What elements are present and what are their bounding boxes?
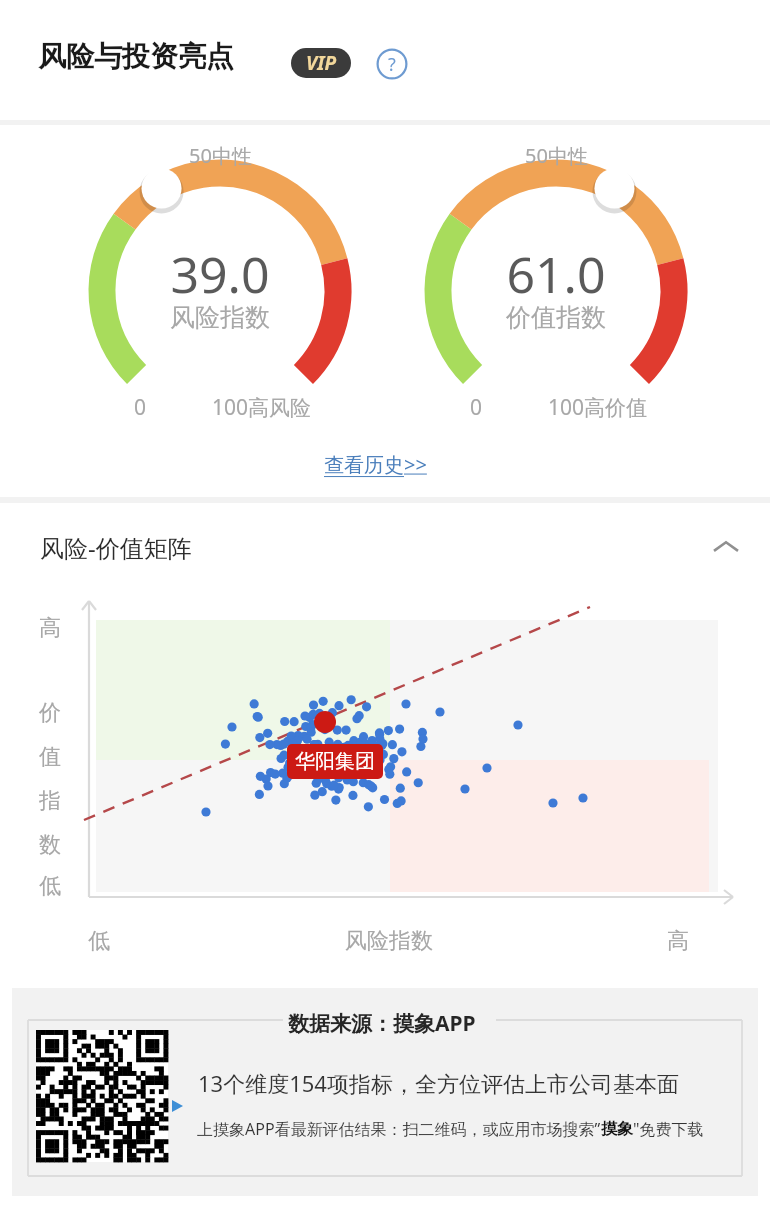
staticText: 0 (134, 393, 147, 422)
staticText: 价值指数 (506, 302, 606, 333)
staticText: 低 (88, 927, 110, 955)
staticText: 39.0 (170, 240, 270, 308)
staticText: 数据来源：摸象APP (288, 1009, 476, 1038)
staticText: 100高风险 (212, 393, 312, 422)
staticText: 0 (470, 393, 483, 422)
staticText: 50中性 (189, 142, 252, 169)
staticText: 值 (39, 743, 61, 771)
staticText: 风险-价值矩阵 (40, 531, 192, 564)
staticText: 高 (667, 927, 689, 955)
staticText: 价 (39, 699, 61, 727)
button[interactable]: 帮助 (376, 48, 408, 80)
staticText: 华阳集团 (295, 749, 375, 774)
staticText: 数 (39, 831, 61, 859)
staticText: VIP (306, 50, 337, 76)
staticText: 50中性 (525, 142, 588, 169)
staticText: 风险与投资亮点 (38, 39, 234, 74)
button[interactable]: VIP (291, 48, 351, 78)
button[interactable]: 华阳集团 (287, 744, 383, 779)
button[interactable]: 查看历史>> (320, 447, 431, 482)
staticText: "免费下载 (633, 1118, 704, 1140)
other: 收起 (704, 525, 748, 569)
staticText: 100高价值 (548, 393, 648, 422)
staticText: 13个维度154项指标，全方位评估上市公司基本面 (198, 1068, 679, 1098)
button[interactable]: 风险-价值矩阵 (0, 524, 770, 570)
staticText: 风险指数 (170, 302, 270, 333)
staticText: 低 (39, 872, 61, 900)
button[interactable]: 风险与投资亮点 (38, 39, 234, 74)
staticText: 高 (39, 614, 61, 642)
staticText: ? (388, 52, 396, 77)
staticText: 风险指数 (345, 927, 433, 955)
staticText: 指 (39, 787, 61, 815)
staticText: 61.0 (506, 240, 606, 308)
staticText: 摸象 (601, 1119, 633, 1139)
staticText: 上摸象APP看最新评估结果：扫二维码，或应用市场搜索” (197, 1118, 601, 1140)
staticText: 查看历史>> (324, 451, 427, 478)
